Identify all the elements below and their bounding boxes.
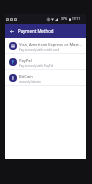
button[interactable]: PayPal: [5, 54, 86, 70]
staticText: PayPal: [19, 58, 32, 64]
staticText: securely bitcoin: [19, 80, 41, 84]
staticText: Pay securely with PayPal: [19, 64, 54, 68]
button[interactable]: BitCoin: [5, 70, 86, 86]
staticText: 37%: [61, 17, 68, 21]
staticText: Pay securely with credit card: [19, 48, 59, 52]
staticText: Payment Method: [18, 28, 54, 34]
staticText: BitCoin: [19, 74, 33, 80]
button[interactable]: Back: [5, 24, 18, 38]
button[interactable]: Visa, American Express or Master...: [5, 38, 86, 54]
staticText: 17:11: [72, 17, 80, 21]
staticText: Visa, American Express or Master...: [19, 42, 83, 48]
